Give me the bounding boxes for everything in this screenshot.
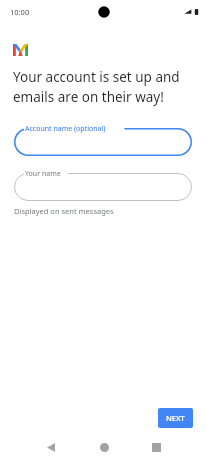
button[interactable]: Recent apps: [145, 436, 167, 458]
staticText: Displayed on sent messages: [14, 206, 114, 216]
staticText: Account name (optional): [25, 124, 106, 134]
button[interactable]: NEXT: [158, 408, 193, 428]
staticText: 10:00: [10, 7, 30, 17]
staticText: NEXT: [166, 413, 185, 423]
button[interactable]: Home: [93, 436, 115, 458]
button[interactable]: Account name (optional): [0, 120, 207, 156]
button[interactable]: Your name: [0, 165, 207, 201]
button[interactable]: Back: [40, 436, 62, 458]
staticText: Your account is set up and emails are on…: [13, 68, 180, 106]
staticText: Your name: [25, 169, 61, 179]
